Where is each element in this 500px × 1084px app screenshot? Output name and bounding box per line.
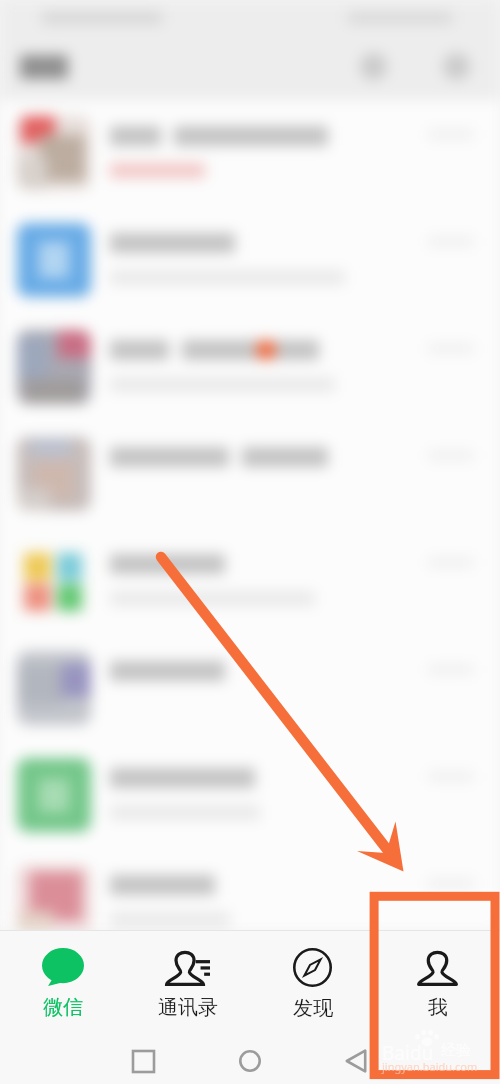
button[interactable]: 通讯录 (125, 930, 250, 1020)
button[interactable] (0, 100, 500, 207)
staticText: jingyan.baidu.com (382, 1059, 478, 1074)
staticText: 我 (428, 995, 448, 1020)
button[interactable]: 发现 (250, 930, 375, 1021)
button[interactable]: Back (334, 1039, 378, 1083)
button[interactable] (0, 742, 500, 849)
button[interactable]: 微信 (0, 930, 125, 1020)
button[interactable]: Search (360, 53, 387, 80)
button[interactable] (0, 635, 500, 742)
staticText: 发现 (293, 996, 333, 1021)
staticText: 微信 (43, 995, 83, 1020)
button[interactable] (0, 849, 500, 930)
button[interactable] (0, 528, 500, 635)
button[interactable]: Recents (121, 1039, 165, 1083)
button[interactable] (0, 421, 500, 528)
button[interactable]: Home (228, 1039, 272, 1083)
staticText: 通讯录 (158, 995, 218, 1020)
button[interactable] (0, 207, 500, 314)
button[interactable]: 我 (375, 930, 500, 1020)
button[interactable] (0, 314, 500, 421)
staticText: Baidu (382, 1040, 434, 1066)
button[interactable]: Add (443, 53, 470, 80)
